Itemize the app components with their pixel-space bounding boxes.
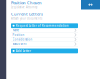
staticText: Current Letters [11,11,43,17]
staticText: Add Letter [16,49,31,53]
button[interactable]: Position [11,33,78,37]
button[interactable]: Request Letter of Recommendation [11,23,78,28]
button[interactable]: Expand [81,0,100,9]
button[interactable]: Add Letter [11,48,78,53]
staticText: Position [13,33,25,37]
staticText: Position Chosen [11,0,42,5]
staticText: Consideration [13,38,33,41]
staticText: Legislative Attorney [11,5,37,9]
staticText: Attach your documents [11,17,42,20]
staticText: Name [13,28,20,32]
button[interactable]: Status sent [11,42,78,46]
button[interactable]: Consideration [11,37,78,42]
staticText: Status sent [13,42,27,46]
staticText: Request Letter of Recommendation [16,24,69,27]
button[interactable]: Name [11,28,78,33]
